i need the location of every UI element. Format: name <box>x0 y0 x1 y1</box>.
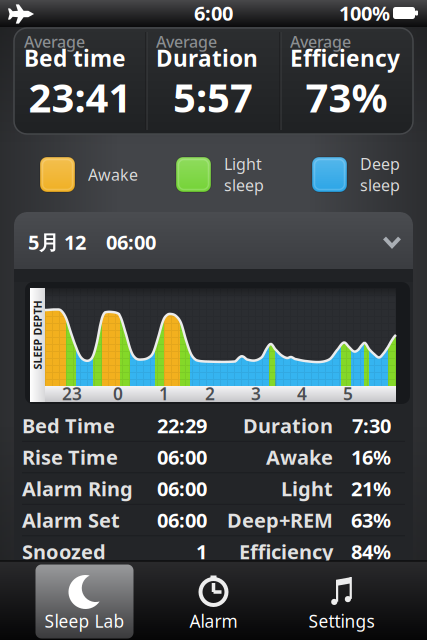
staticText: 0 <box>113 382 123 405</box>
staticText: 73% <box>305 70 387 123</box>
staticText: 23:41 <box>28 70 131 123</box>
staticText: 23 <box>62 382 82 405</box>
staticText: Awake <box>88 164 138 185</box>
button[interactable]: May 12 06:00, expand <box>14 212 413 282</box>
staticText: 7:30 <box>352 412 391 439</box>
staticText: 4 <box>297 382 307 405</box>
staticText: Alarm Ring <box>22 475 133 502</box>
staticText: Rise Time <box>22 444 118 470</box>
button[interactable]: Alarm <box>158 561 268 640</box>
staticText: 5:57 <box>173 70 253 123</box>
staticText: 5 <box>343 382 353 405</box>
staticText: 5月 12 06:00 <box>28 229 156 255</box>
staticText: Settings <box>308 609 374 632</box>
staticText: Bed time <box>24 43 126 73</box>
staticText: Alarm <box>189 609 237 632</box>
staticText: 16% <box>351 444 391 470</box>
staticText: Duration <box>156 43 258 73</box>
staticText: 3 <box>251 382 261 405</box>
staticText: Light <box>281 475 333 502</box>
staticText: 1 <box>159 382 169 405</box>
staticText: 63% <box>351 507 391 533</box>
button[interactable]: Sleep Lab <box>35 561 133 640</box>
staticText: 06:00 <box>157 475 207 502</box>
staticText: Bed Time <box>22 412 115 439</box>
staticText: Sleep Lab <box>44 609 124 632</box>
staticText: Average <box>290 31 351 52</box>
staticText: Average <box>24 31 85 52</box>
staticText: Deep sleep <box>360 153 400 196</box>
staticText: Deep+REM <box>227 507 333 533</box>
staticText: Alarm Set <box>22 507 120 533</box>
staticText: 22:29 <box>157 412 207 439</box>
staticText: 21% <box>351 475 391 502</box>
staticText: Snoozed <box>22 538 106 565</box>
staticText: 06:00 <box>157 507 207 533</box>
staticText: Awake <box>266 444 333 470</box>
staticText: Efficiency <box>239 538 333 565</box>
staticText: Light sleep <box>224 153 264 196</box>
staticText: 1 <box>196 538 207 565</box>
staticText: 100% <box>339 0 390 26</box>
staticText: Average <box>156 31 217 52</box>
staticText: 06:00 <box>157 444 207 470</box>
staticText: 84% <box>351 538 391 565</box>
staticText: 2 <box>205 382 215 405</box>
staticText: 6:00 <box>194 0 233 26</box>
staticText: SLEEP DEPTH <box>3 328 72 342</box>
button[interactable]: Settings <box>286 561 396 640</box>
staticText: Efficiency <box>290 43 400 73</box>
staticText: Duration <box>243 412 333 439</box>
